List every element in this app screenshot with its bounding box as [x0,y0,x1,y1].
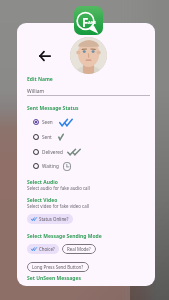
staticText: Select Message Sending Mode [27,233,102,240]
staticText: Seen [42,119,53,125]
button[interactable]: Choice? [27,244,59,254]
staticText: Real Mode? [67,246,91,252]
staticText: Choice? [39,246,55,252]
staticText: Set UnSeen Messages [27,275,81,282]
staticText: Status Online? [39,216,69,222]
button[interactable]: Back [36,47,54,65]
staticText: Long Press Send Button? [32,264,84,270]
button[interactable]: Long Press Send Button? [27,262,89,272]
staticText: William [27,88,45,95]
staticText: Select audio for fake audio call [27,185,90,191]
button[interactable]: Sent [33,130,101,144]
button[interactable]: Status Online? [27,214,73,224]
staticText: AKE [88,20,97,26]
staticText: Sent Message Status [27,105,79,112]
staticText: F [82,15,89,31]
staticText: Sent [42,134,52,140]
button[interactable]: Seen [33,115,101,129]
staticText: Edit Name [27,76,53,83]
staticText: Select Video [27,197,58,204]
staticText: Waiting [42,163,59,169]
staticText: Delivered [42,149,63,155]
staticText: Select Audio [27,179,58,186]
button[interactable]: Fake chat app icon [74,6,103,35]
button[interactable]: Waiting [33,159,101,173]
button[interactable]: Delivered [33,145,101,159]
button[interactable]: Profile photo [70,37,107,74]
button[interactable]: Real Mode? [62,244,96,254]
staticText: Select video for fake video call [27,203,89,209]
